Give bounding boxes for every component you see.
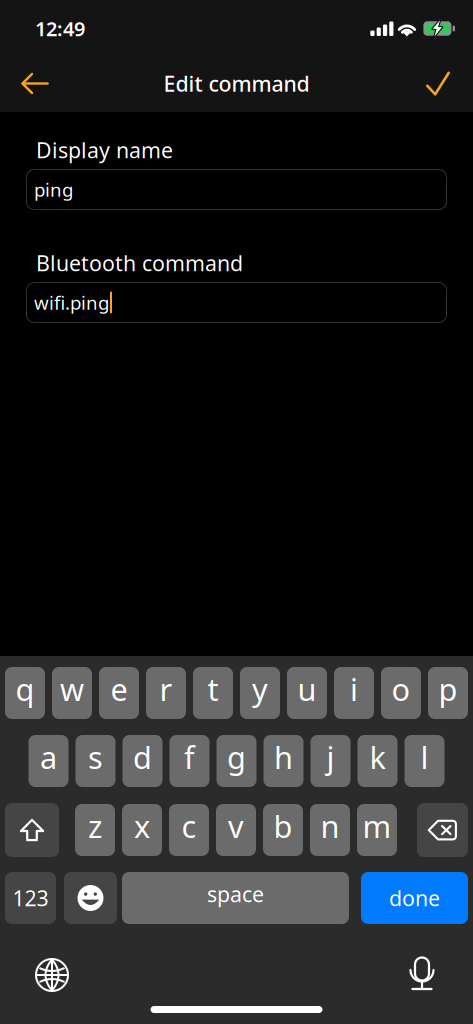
button[interactable]: z xyxy=(75,804,115,856)
button[interactable]: Shift xyxy=(5,803,59,857)
staticText: 123 xyxy=(12,884,48,912)
button[interactable]: o xyxy=(381,667,421,719)
button[interactable]: done xyxy=(361,872,468,924)
staticText: z xyxy=(88,806,102,846)
button[interactable]: n xyxy=(310,804,350,856)
button[interactable]: f xyxy=(169,735,209,787)
button[interactable]: y xyxy=(240,667,280,719)
staticText: p xyxy=(438,669,457,709)
staticText: m xyxy=(362,806,391,846)
staticText: r xyxy=(159,669,172,709)
button[interactable]: Delete xyxy=(417,803,468,857)
staticText: n xyxy=(320,806,339,846)
staticText: 12:49 xyxy=(35,15,85,42)
button[interactable]: g xyxy=(216,735,256,787)
staticText: u xyxy=(297,669,316,709)
button[interactable]: 123 xyxy=(5,872,56,924)
button[interactable]: u xyxy=(287,667,327,719)
staticText: a xyxy=(40,737,57,777)
button[interactable]: m xyxy=(357,804,397,856)
staticText: Display name xyxy=(36,136,173,164)
button[interactable]: e xyxy=(99,667,139,719)
staticText: space xyxy=(207,880,264,908)
button[interactable]: j xyxy=(310,735,350,787)
button[interactable]: c xyxy=(169,804,209,856)
button[interactable]: p xyxy=(428,667,468,719)
staticText: i xyxy=(350,669,358,709)
button[interactable]: space xyxy=(122,872,349,924)
staticText: h xyxy=(274,737,293,777)
button[interactable]: Back xyxy=(9,55,61,112)
staticText: d xyxy=(133,737,152,777)
button[interactable]: h xyxy=(263,735,303,787)
button[interactable]: d xyxy=(122,735,162,787)
staticText: g xyxy=(227,737,246,777)
staticText: done xyxy=(389,884,440,912)
staticText: c xyxy=(181,806,196,846)
staticText: t xyxy=(207,669,218,709)
button[interactable]: s xyxy=(75,735,115,787)
staticText: l xyxy=(420,737,428,777)
staticText: e xyxy=(110,669,127,709)
button[interactable]: Emoji xyxy=(64,872,117,924)
button[interactable]: Dictate xyxy=(407,956,437,994)
button[interactable]: Next keyboard xyxy=(36,959,68,991)
button[interactable]: a xyxy=(28,735,68,787)
button[interactable]: b xyxy=(263,804,303,856)
button[interactable]: i xyxy=(334,667,374,719)
staticText: ping xyxy=(34,177,73,202)
button[interactable]: k xyxy=(357,735,397,787)
staticText: x xyxy=(134,806,150,846)
staticText: k xyxy=(369,737,385,777)
button[interactable]: v xyxy=(216,804,256,856)
staticText: b xyxy=(273,806,292,846)
staticText: s xyxy=(88,737,103,777)
staticText: v xyxy=(228,806,244,846)
button[interactable]: w xyxy=(52,667,92,719)
button[interactable]: x xyxy=(122,804,162,856)
button[interactable]: l xyxy=(404,735,444,787)
button[interactable]: t xyxy=(193,667,233,719)
staticText: w xyxy=(60,669,84,709)
button[interactable]: q xyxy=(5,667,45,719)
staticText: f xyxy=(184,737,195,777)
staticText: Bluetooth command xyxy=(36,249,243,277)
staticText: o xyxy=(391,669,410,709)
staticText: y xyxy=(252,669,268,709)
button[interactable]: r xyxy=(146,667,186,719)
staticText: q xyxy=(15,669,34,709)
button[interactable]: Save xyxy=(412,55,464,112)
staticText: Edit command xyxy=(163,69,309,98)
staticText: j xyxy=(326,737,334,777)
staticText: wifi.ping xyxy=(34,290,109,315)
